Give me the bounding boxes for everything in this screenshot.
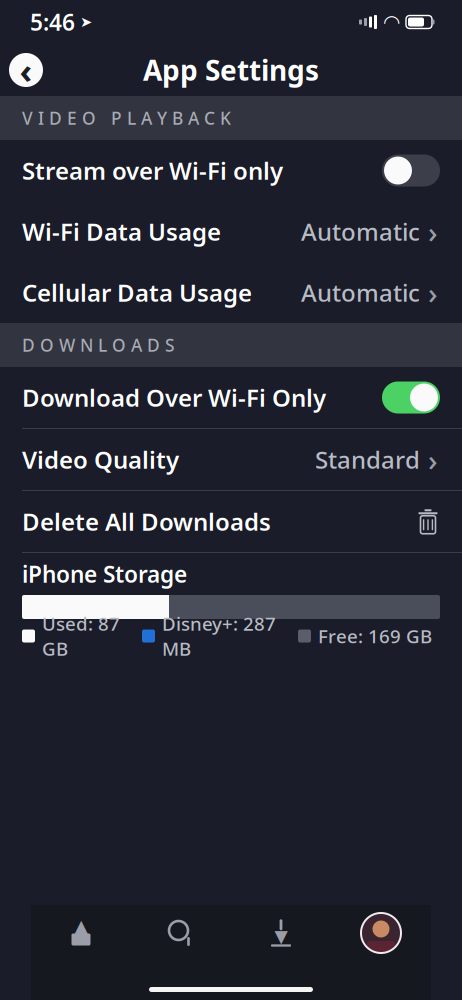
staticText: App Settings [143, 51, 319, 89]
button[interactable]: Stream over Wi-Fi only [0, 140, 462, 201]
staticText: › [428, 440, 438, 479]
staticText: ▲ [73, 915, 89, 939]
button[interactable]: Video Quality [0, 429, 462, 490]
staticText: V I D E O P L A Y B A C K [22, 106, 231, 129]
button[interactable]: Download Over Wi-Fi Only [0, 367, 462, 428]
button[interactable]: Back [6, 50, 46, 90]
staticText: › [428, 212, 438, 251]
button[interactable]: Home [31, 905, 131, 961]
staticText: ‹ [19, 47, 32, 93]
staticText: › [428, 273, 438, 312]
staticText: 5:46 [30, 7, 75, 37]
button[interactable]: Cellular Data Usage [0, 262, 462, 323]
staticText: Standard [315, 444, 420, 475]
staticText: Used: 87 GB [42, 611, 120, 661]
staticText: Download Over Wi-Fi Only [22, 382, 326, 413]
staticText: Delete All Downloads [22, 506, 271, 537]
staticText: Automatic [301, 216, 420, 247]
staticText: Wi-Fi Data Usage [22, 216, 221, 247]
staticText: D O W N L O A D S [22, 333, 175, 356]
staticText: Cellular Data Usage [22, 277, 252, 308]
button[interactable]: Downloads [231, 905, 331, 961]
staticText: iPhone Storage [22, 559, 187, 589]
staticText: Disney+: 287 MB [162, 611, 276, 661]
staticText: ➤ [80, 14, 92, 30]
staticText: ▼ [274, 926, 287, 946]
staticText: ◠ [384, 11, 399, 33]
button[interactable]: Search [131, 905, 231, 961]
button[interactable]: Profile [331, 905, 431, 961]
button[interactable]: Delete All Downloads [0, 491, 462, 552]
staticText: Video Quality [22, 444, 179, 475]
staticText: Stream over Wi-Fi only [22, 155, 283, 186]
button[interactable]: Wi-Fi Data Usage [0, 201, 462, 262]
staticText: Free: 169 GB [318, 624, 432, 648]
staticText: Automatic [301, 277, 420, 308]
